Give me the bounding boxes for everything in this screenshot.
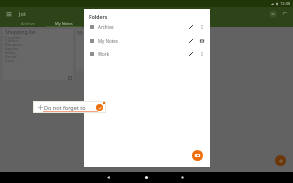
staticText: Do not forget to <box>44 104 86 111</box>
staticText: Soda <box>5 50 15 56</box>
staticText: Archive <box>21 21 35 26</box>
staticText: Bread <box>5 54 17 60</box>
button[interactable]: Archive <box>10 20 46 27</box>
button[interactable]: More options for My Notes <box>197 36 207 46</box>
staticText: 12:08 <box>280 1 291 6</box>
button[interactable]: More options for Archive <box>197 22 207 32</box>
button[interactable]: Search <box>268 9 278 19</box>
staticText: Work <box>98 51 110 57</box>
button[interactable]: My Notes <box>46 20 82 27</box>
button[interactable]: Home <box>139 172 153 183</box>
staticText: Jot <box>19 10 26 17</box>
staticText: Juice <box>5 58 15 64</box>
button[interactable]: Shopping list <box>3 29 73 80</box>
button[interactable]: Open navigation drawer <box>5 10 13 18</box>
staticText: My Notes <box>55 21 73 26</box>
staticText: Shopping list <box>5 29 36 36</box>
staticText: Cookies <box>5 35 21 41</box>
button[interactable]: Recent apps <box>175 172 189 183</box>
button[interactable]: Rename My Notes <box>186 36 196 46</box>
staticText: My Notes <box>98 38 119 44</box>
staticText: Folders <box>89 14 108 21</box>
staticText: Bananas <box>5 42 22 48</box>
button[interactable]: Rename Archive <box>186 22 196 32</box>
other: Move <box>38 105 43 110</box>
button[interactable]: Create new folder <box>192 150 203 161</box>
button[interactable]: Move <box>34 102 105 112</box>
button[interactable]: My Notes <box>84 34 210 48</box>
button[interactable]: Add note <box>275 155 286 166</box>
staticText: Apples <box>5 46 19 52</box>
staticText: Archive <box>98 24 114 30</box>
button[interactable]: Rename Work <box>186 49 196 59</box>
button[interactable]: Save note <box>96 104 103 111</box>
button[interactable]: Back <box>101 172 115 183</box>
button[interactable]: Work <box>84 47 210 61</box>
button[interactable]: Archive <box>84 20 210 34</box>
button[interactable]: 55 <box>76 29 146 71</box>
staticText: 55 <box>77 30 83 37</box>
staticText: Coffee <box>5 38 18 44</box>
button[interactable]: More options for Work <box>197 49 207 59</box>
button[interactable]: More options <box>280 9 290 19</box>
